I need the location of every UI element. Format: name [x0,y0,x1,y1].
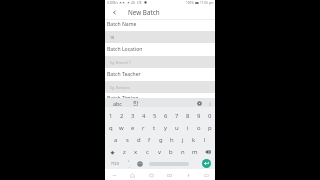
button[interactable]: o [193,122,204,134]
staticText: l [204,136,206,144]
button[interactable]: Eg. Branch 1 [105,56,215,68]
button[interactable]: g [155,134,166,146]
staticText: e [131,124,135,132]
staticText: Batch Location [107,46,143,53]
staticText: v [158,148,161,156]
staticText: i [187,124,189,132]
button[interactable]: Enter [198,158,215,169]
staticText: ?123 [111,161,119,166]
button[interactable]: 3 [127,110,138,122]
staticText: b [169,148,173,156]
staticText: ° [128,160,130,164]
button[interactable]: p [204,122,215,134]
staticText: s [126,136,129,144]
button[interactable]: abc [109,98,126,109]
button[interactable]: 9 [193,110,204,122]
staticText: 1 [109,112,113,120]
button[interactable]: 2 [116,110,127,122]
staticText: Batch Timing [107,95,139,102]
staticText: 6 [164,112,168,120]
button[interactable]: q [105,122,116,134]
button[interactable]: t [149,122,160,134]
button[interactable]: j [177,134,188,146]
button[interactable]: Recents [142,170,160,180]
button[interactable]: 5 [149,110,160,122]
button[interactable]: Back [105,5,123,19]
button[interactable]: 7 [171,110,182,122]
staticText: 2 [120,112,124,120]
button[interactable]: n [177,146,189,158]
staticText: 한 [133,100,139,107]
button[interactable]: Split screen [160,170,178,180]
staticText: m [192,148,198,156]
button[interactable]: Shift [105,146,119,158]
button[interactable]: 4 [138,110,149,122]
button[interactable]: Screenshot [179,170,197,180]
button[interactable]: m [189,146,201,158]
button[interactable]: 10 [105,31,215,43]
button[interactable]: Backspace [201,146,215,158]
button[interactable]: Eg. Barbara [105,81,215,93]
staticText: c [146,148,149,156]
button[interactable]: k [188,134,199,146]
staticText: k [192,136,196,144]
button[interactable]: 0 [204,110,215,122]
button[interactable]: i [182,122,193,134]
button[interactable]: x [130,146,141,158]
button[interactable]: u [171,122,182,134]
staticText: Batch Teacher [107,71,141,78]
button[interactable]: h [166,134,177,146]
staticText: f [148,136,151,144]
staticText: 9 [197,112,201,120]
button[interactable]: z [119,146,130,158]
staticText: 5 [153,112,157,120]
staticText: w [119,124,124,132]
button[interactable]: 한 [129,98,143,109]
button[interactable]: v [153,146,165,158]
staticText: p [208,124,212,132]
button[interactable]: 1 [105,110,116,122]
staticText: Eg. Branch 1 [110,60,132,65]
staticText: 4G LTE [131,1,142,5]
staticText: Eg. Barbara [110,85,130,90]
button[interactable]: Back [105,170,123,180]
staticText: j [182,136,184,144]
button[interactable]: f [144,134,155,146]
button[interactable]: l [199,134,210,146]
staticText: h [170,136,174,144]
button[interactable]: 8 [182,110,193,122]
staticText: n [181,148,185,156]
staticText: r [142,124,145,132]
button[interactable]: a [110,134,122,146]
button[interactable]: s [122,134,133,146]
button[interactable]: ° [124,158,133,169]
button[interactable]: y [160,122,171,134]
button[interactable]: d [133,134,144,146]
button[interactable]: More options [205,98,214,109]
staticText: z [123,148,126,156]
staticText: Batch Name [107,21,137,28]
button[interactable]: e [127,122,138,134]
button[interactable]: Keyboard settings [194,98,205,109]
button[interactable]: 6 [160,110,171,122]
staticText: x [134,148,138,156]
staticText: g [159,136,163,144]
button[interactable]: c [141,146,153,158]
staticText: 10 [110,35,115,40]
staticText: 0 [208,112,212,120]
button[interactable]: Emoji [133,158,147,169]
button[interactable]: r [138,122,149,134]
staticText: y [164,124,168,132]
button[interactable]: w [116,122,127,134]
button[interactable]: b [165,146,177,158]
staticText: o [197,124,201,132]
button[interactable]: Keyboard [197,170,215,180]
staticText: 0.2KB/s [107,1,118,5]
staticText: 3 [131,112,135,120]
staticText: u [175,124,179,132]
staticText: 100% [186,1,194,5]
button[interactable]: ?123 [105,158,124,169]
staticText: d [137,136,141,144]
button[interactable]: Home [123,170,141,180]
